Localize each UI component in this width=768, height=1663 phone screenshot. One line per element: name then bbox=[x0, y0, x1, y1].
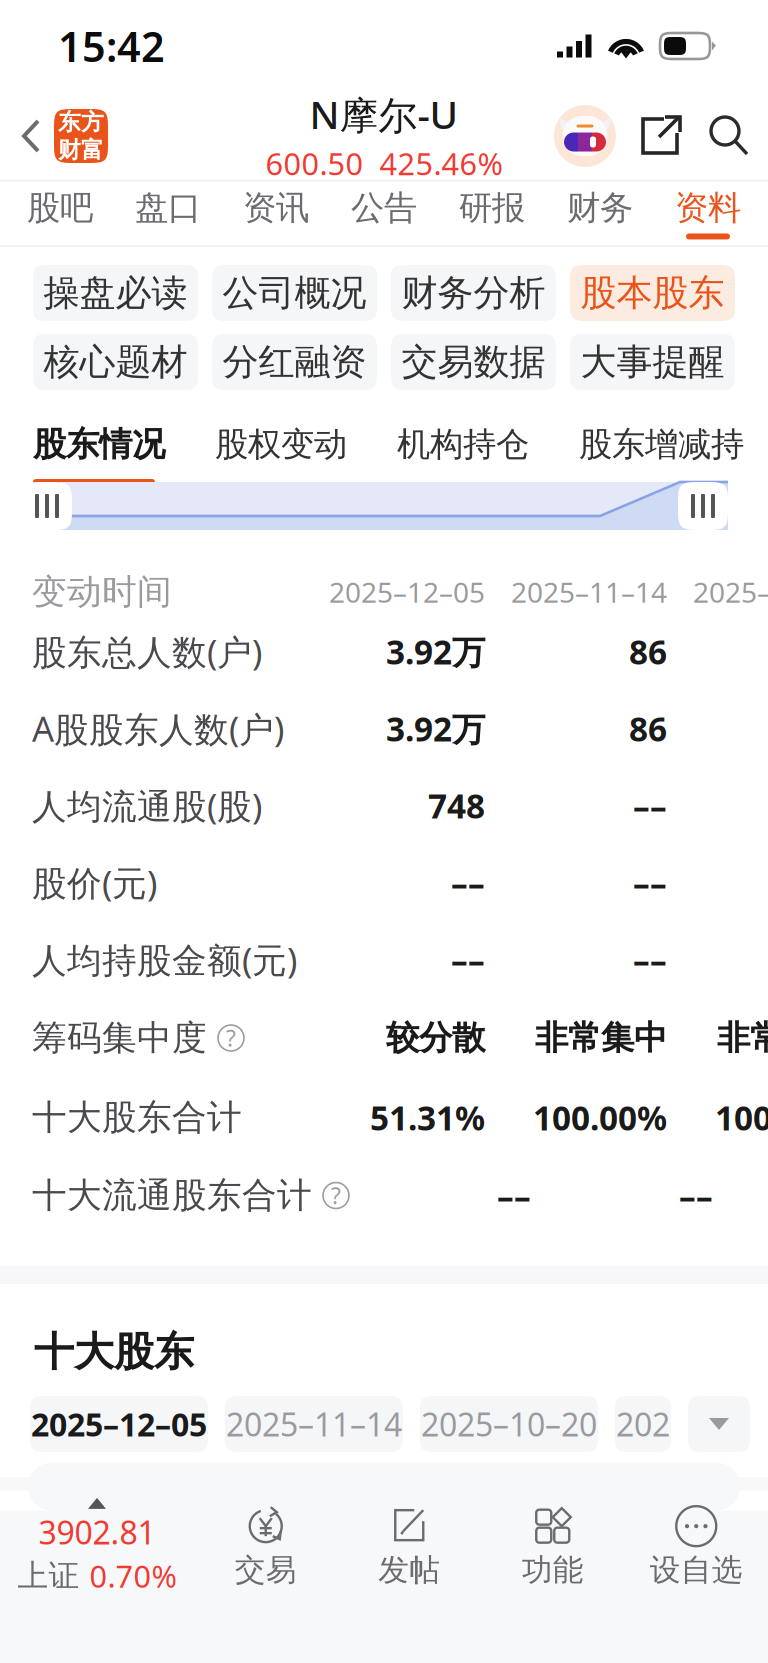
staticText: 600.50 425.46% bbox=[265, 143, 502, 184]
staticText: 筹码集中度 bbox=[32, 1017, 207, 1059]
staticText: 2025–11–14 bbox=[511, 573, 667, 611]
staticText: 股东增减持 bbox=[579, 424, 744, 465]
staticText: –– bbox=[633, 860, 667, 905]
staticText: 财务分析 bbox=[401, 271, 545, 315]
staticText: 202 bbox=[616, 1403, 670, 1445]
staticText: 股本股东 bbox=[580, 271, 724, 315]
staticText: 东方 bbox=[58, 108, 104, 136]
staticText: 机构持仓 bbox=[397, 424, 529, 465]
staticText: –– bbox=[451, 937, 485, 982]
button[interactable]: 返回 bbox=[0, 109, 108, 163]
staticText: 86 bbox=[629, 629, 667, 674]
button[interactable]: 设自选 bbox=[624, 1496, 768, 1598]
button[interactable]: 股吧 bbox=[6, 181, 114, 245]
button[interactable]: 研报 bbox=[438, 181, 546, 245]
button[interactable]: 更多日期 bbox=[688, 1396, 750, 1452]
button[interactable]: 功能 bbox=[481, 1496, 624, 1598]
button[interactable]: 2025–12–05 bbox=[30, 1396, 208, 1452]
staticText: 设自选 bbox=[650, 1551, 743, 1589]
staticText: 86 bbox=[629, 706, 667, 751]
button[interactable]: 搜索 bbox=[706, 113, 752, 159]
staticText: ? bbox=[331, 1180, 341, 1210]
staticText: 公司概况 bbox=[222, 271, 366, 315]
staticText: 十大流通股东合计 bbox=[32, 1174, 312, 1217]
staticText: 研报 bbox=[459, 187, 525, 228]
button[interactable]: 发帖 bbox=[337, 1496, 481, 1598]
button[interactable]: 202 bbox=[615, 1396, 671, 1452]
staticText: 资料 bbox=[675, 187, 741, 228]
button[interactable]: 3902.81 bbox=[0, 1496, 194, 1598]
staticText: 公告 bbox=[351, 187, 417, 228]
staticText: 51.31% bbox=[370, 1095, 485, 1140]
staticText: A股股东人数(户) bbox=[32, 705, 284, 752]
button[interactable]: 2025–11–14 bbox=[225, 1396, 403, 1452]
staticText: 盘口 bbox=[135, 187, 201, 228]
button[interactable]: 财务 bbox=[546, 181, 654, 245]
staticText: 财务 bbox=[567, 187, 633, 228]
staticText: 100.00% bbox=[715, 1095, 768, 1140]
staticText: 748 bbox=[428, 783, 485, 828]
button[interactable]: 交易数据 bbox=[391, 334, 556, 390]
staticText: 大事提醒 bbox=[580, 340, 724, 384]
staticText: –– bbox=[497, 1173, 531, 1218]
staticText: 较分散 bbox=[386, 1017, 485, 1058]
button[interactable]: 股本股东 bbox=[570, 265, 735, 321]
staticText: 功能 bbox=[522, 1551, 584, 1589]
staticText: 分红融资 bbox=[222, 340, 366, 384]
button[interactable]: 股东增减持 bbox=[579, 424, 761, 485]
button[interactable]: 资料 bbox=[654, 181, 762, 245]
button[interactable]: 分红融资 bbox=[212, 334, 377, 390]
staticText: 2025–10–20 bbox=[421, 1403, 597, 1445]
button[interactable]: 核心题材 bbox=[33, 334, 198, 390]
staticText: 非常集中 bbox=[535, 1017, 667, 1058]
button[interactable]: 财务分析 bbox=[391, 265, 556, 321]
staticText: 股吧 bbox=[27, 187, 93, 228]
button[interactable]: 2025–10–20 bbox=[420, 1396, 598, 1452]
staticText: 3.92万 bbox=[386, 706, 485, 751]
staticText: 人均持股金额(元) bbox=[32, 936, 297, 982]
staticText: –– bbox=[633, 937, 667, 982]
staticText: 财富 bbox=[58, 136, 104, 164]
button[interactable]: 操盘必读 bbox=[33, 265, 198, 321]
button[interactable]: 交易 bbox=[194, 1496, 337, 1598]
staticText: 3.92万 bbox=[386, 629, 485, 674]
staticText: 股权变动 bbox=[215, 424, 347, 465]
staticText: 3902.81 bbox=[38, 1511, 155, 1553]
staticText: –– bbox=[633, 783, 667, 828]
button[interactable]: 盘口 bbox=[114, 181, 222, 245]
staticText: 交易 bbox=[235, 1551, 297, 1589]
button[interactable]: 分享 bbox=[638, 112, 684, 160]
staticText: 上证 bbox=[17, 1557, 79, 1595]
staticText: 股价(元) bbox=[32, 859, 157, 905]
staticText: 2025–11–14 bbox=[226, 1403, 402, 1445]
button[interactable]: 股权变动 bbox=[215, 424, 397, 485]
staticText: 交易数据 bbox=[401, 340, 545, 384]
button[interactable]: 大事提醒 bbox=[570, 334, 735, 390]
staticText: 变动时间 bbox=[32, 571, 172, 613]
staticText: 股东情况 bbox=[33, 424, 165, 465]
staticText: 操盘必读 bbox=[43, 271, 187, 315]
button[interactable]: 资讯 bbox=[222, 181, 330, 245]
button[interactable]: 公司概况 bbox=[212, 265, 377, 321]
staticText: 2025–12–05 bbox=[329, 573, 485, 611]
staticText: –– bbox=[679, 1173, 713, 1218]
staticText: N摩尔-U bbox=[309, 88, 458, 140]
button[interactable]: 机构持仓 bbox=[397, 424, 579, 485]
staticText: 十大股东合计 bbox=[32, 1096, 242, 1139]
staticText: 资讯 bbox=[243, 187, 309, 228]
staticText: 股东总人数(户) bbox=[32, 628, 262, 674]
staticText: –– bbox=[451, 860, 485, 905]
staticText: 非常集中 bbox=[717, 1017, 768, 1058]
button[interactable]: AI助手 bbox=[554, 105, 616, 167]
staticText: 核心题材 bbox=[43, 340, 187, 384]
button[interactable]: 公告 bbox=[330, 181, 438, 245]
staticText: 100.00% bbox=[533, 1095, 667, 1140]
staticText: ? bbox=[226, 1023, 236, 1053]
staticText: 0.70% bbox=[89, 1555, 176, 1596]
staticText: 发帖 bbox=[378, 1551, 440, 1589]
button[interactable]: 股东情况 bbox=[33, 424, 215, 485]
staticText: 15:42 bbox=[58, 19, 165, 73]
staticText: 十大股东 bbox=[34, 1327, 194, 1376]
staticText: 2025–12–05 bbox=[31, 1403, 207, 1445]
staticText: 人均流通股(股) bbox=[32, 782, 262, 828]
